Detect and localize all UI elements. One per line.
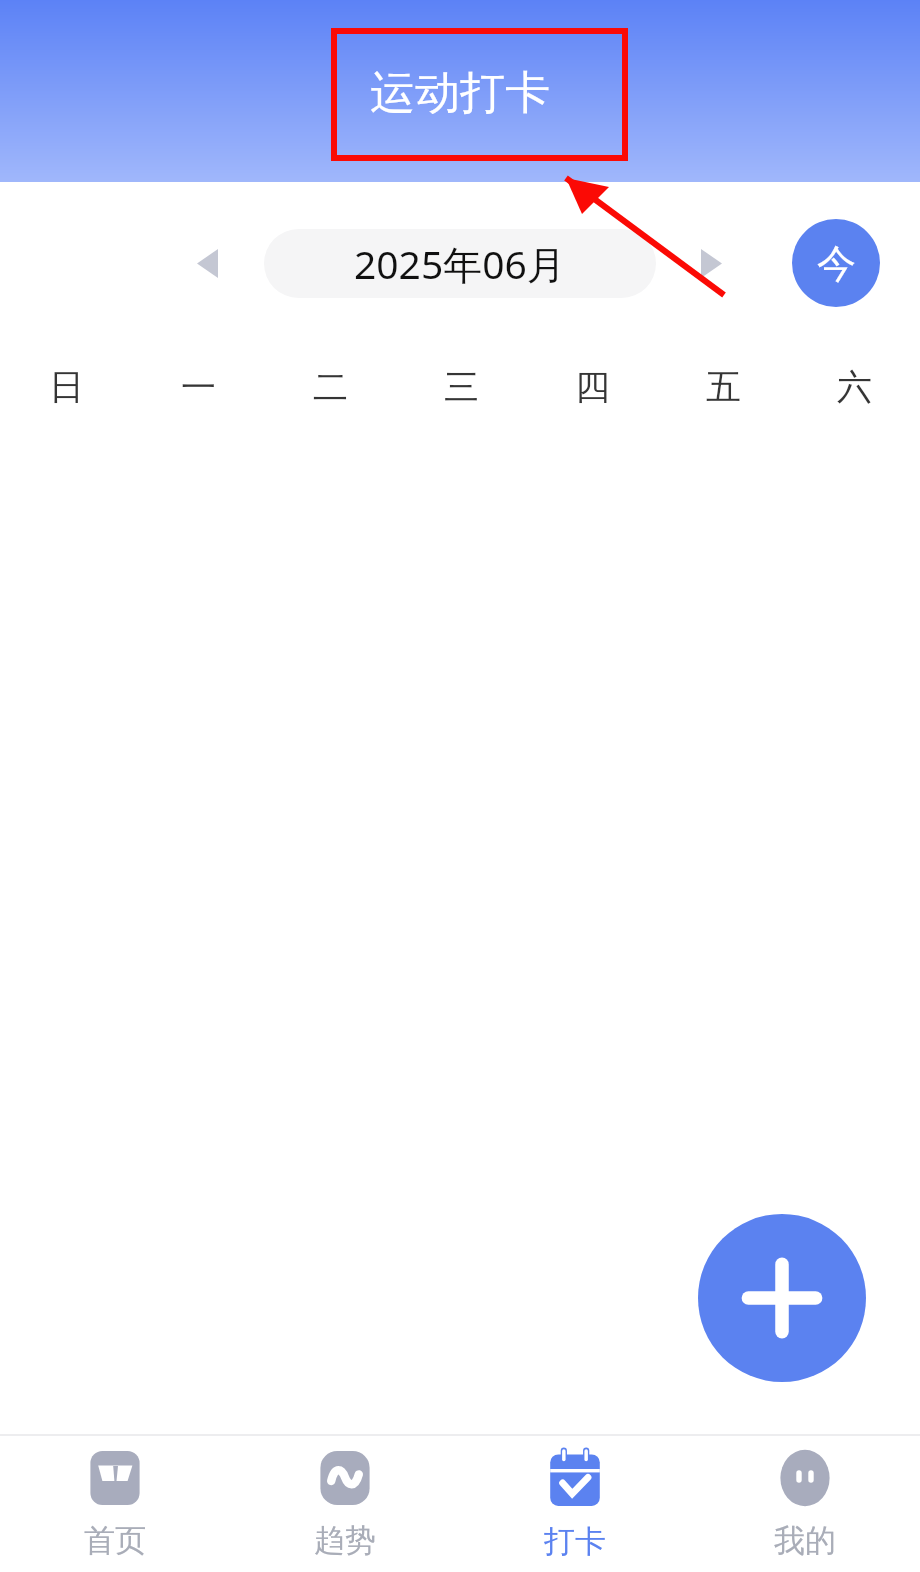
button[interactable]: 下一个月 xyxy=(680,232,742,294)
button[interactable]: 首页 xyxy=(0,1436,230,1572)
staticText: 首页 xyxy=(84,1521,146,1560)
button[interactable]: 打卡 xyxy=(460,1436,690,1572)
staticText: 我的 xyxy=(774,1521,836,1560)
staticText: 趋势 xyxy=(314,1521,376,1560)
staticText: 今 xyxy=(817,239,856,288)
button[interactable]: 我的 xyxy=(690,1436,920,1572)
staticText: 一 xyxy=(181,365,216,409)
button[interactable]: 添加打卡 xyxy=(698,1214,866,1382)
staticText: 五 xyxy=(706,365,741,409)
staticText: 四 xyxy=(575,365,610,409)
button[interactable]: 趋势 xyxy=(230,1436,460,1572)
staticText: 三 xyxy=(444,365,479,409)
button[interactable]: 今 xyxy=(792,219,880,307)
staticText: 运动打卡 xyxy=(370,65,550,122)
staticText: 打卡 xyxy=(544,1522,606,1561)
staticText: 2025年06月 xyxy=(354,237,566,290)
staticText: 日 xyxy=(49,365,84,409)
staticText: 二 xyxy=(313,365,348,409)
staticText: 六 xyxy=(837,365,872,409)
button[interactable]: 上一个月 xyxy=(176,232,238,294)
button[interactable]: 2025年06月 xyxy=(264,229,656,298)
